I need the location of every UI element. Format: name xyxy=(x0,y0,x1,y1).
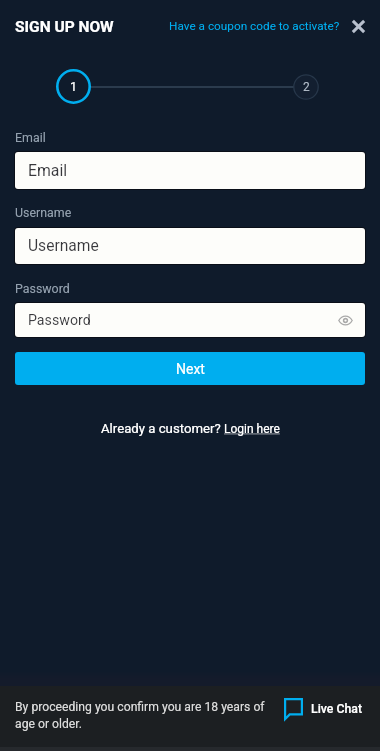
button[interactable]: Show password xyxy=(334,309,356,331)
staticText: 1 xyxy=(70,79,78,94)
button[interactable]: Close xyxy=(347,15,369,37)
staticText: Password xyxy=(15,281,70,296)
button[interactable]: Step 1 xyxy=(56,69,91,104)
button[interactable]: Have a coupon code to activate? xyxy=(163,13,346,39)
button[interactable]: Password xyxy=(14,302,366,338)
staticText: By proceeding you confirm you are 18 yea… xyxy=(15,700,265,731)
staticText: Password xyxy=(28,312,91,329)
staticText: Next xyxy=(176,361,205,377)
staticText: Username xyxy=(15,205,72,220)
staticText: 2 xyxy=(303,80,310,94)
button[interactable]: Login here xyxy=(224,422,280,436)
staticText: Email xyxy=(15,130,46,145)
staticText: Username xyxy=(28,237,99,255)
staticText: Live Chat xyxy=(311,702,363,716)
staticText: Email xyxy=(28,161,68,180)
staticText: SIGN UP NOW xyxy=(15,18,114,36)
staticText: Have a coupon code to activate? xyxy=(169,19,340,33)
button[interactable]: Username xyxy=(14,227,366,265)
staticText: Already a customer? xyxy=(101,421,224,436)
button[interactable]: Email xyxy=(14,151,366,190)
button[interactable]: Step 2 xyxy=(293,74,319,100)
staticText: Login here xyxy=(224,422,280,436)
button[interactable]: Live Chat xyxy=(284,698,363,722)
button[interactable]: Next xyxy=(15,352,365,385)
